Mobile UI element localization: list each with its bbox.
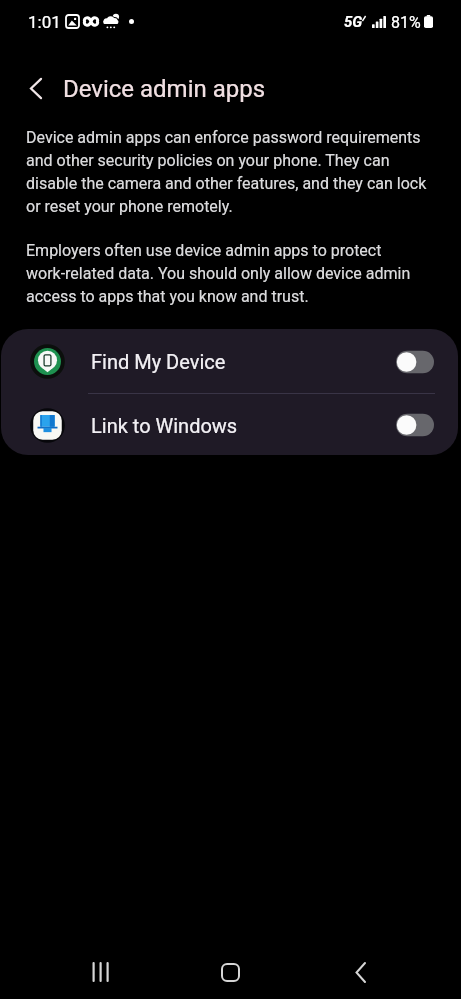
staticText: Employers often use device admin apps to… xyxy=(26,241,432,306)
staticText: 5G xyxy=(344,13,363,31)
staticText: Device admin apps xyxy=(63,75,266,103)
staticText: Device admin apps can enforce password r… xyxy=(26,128,432,216)
button[interactable]: Navigate up xyxy=(17,69,55,107)
staticText: 1:01 xyxy=(28,12,61,32)
button[interactable]: Link to Windows xyxy=(1,394,458,455)
button[interactable]: Home xyxy=(208,950,252,994)
button[interactable]: Find My Device xyxy=(1,330,458,393)
button[interactable]: Recent apps xyxy=(78,950,122,994)
button[interactable]: Toggle off xyxy=(396,350,434,374)
staticText: Link to Windows xyxy=(91,414,238,437)
staticText: Find My Device xyxy=(91,350,226,373)
button[interactable]: Back xyxy=(339,950,383,994)
staticText: 81% xyxy=(391,13,421,32)
button[interactable]: Toggle off xyxy=(396,413,434,437)
